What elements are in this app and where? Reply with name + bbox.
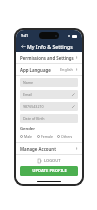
staticText: UPDATE PROFILE: [32, 168, 67, 174]
button[interactable]: LOGOUT: [16, 155, 82, 166]
staticText: Manage Account: [20, 146, 56, 152]
staticText: 9876543210: [23, 104, 44, 109]
button[interactable]: App Language: [16, 64, 82, 75]
staticText: Male: [24, 134, 33, 139]
button[interactable]: Manage Account: [16, 143, 82, 154]
staticText: Female: [41, 134, 53, 139]
button[interactable]: Email: [20, 90, 78, 99]
staticText: My Info & Settings: [27, 43, 73, 50]
staticText: App Language: [20, 67, 51, 73]
button[interactable]: Date of Birth: [20, 114, 78, 123]
button[interactable]: Others: [57, 134, 73, 139]
staticText: Name: [23, 80, 34, 85]
button[interactable]: 9876543210: [20, 102, 78, 111]
staticText: 9:41: [21, 33, 29, 38]
staticText: Gender: [20, 126, 36, 132]
staticText: Date of Birth: [23, 116, 45, 121]
staticText: Permissions and Settings: [20, 55, 74, 61]
staticText: English: [60, 67, 73, 72]
staticText: Email: [23, 92, 33, 97]
button[interactable]: UPDATE PROFILE: [20, 166, 78, 176]
button[interactable]: Male: [20, 134, 33, 139]
staticText: Others: [61, 134, 73, 139]
button[interactable]: Name: [20, 78, 78, 87]
staticText: LOGOUT: [44, 158, 61, 163]
button[interactable]: Back: [20, 43, 27, 50]
button[interactable]: Female: [37, 134, 53, 139]
button[interactable]: Permissions and Settings: [16, 52, 82, 63]
